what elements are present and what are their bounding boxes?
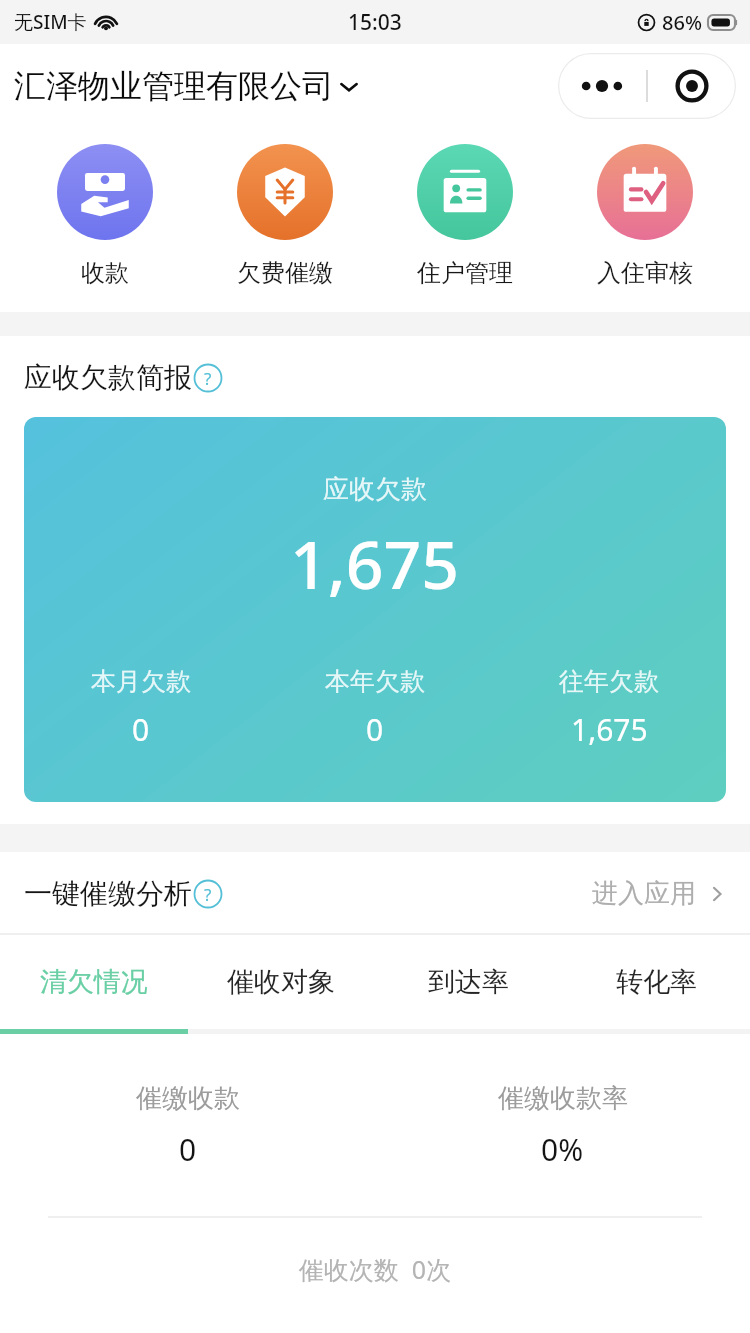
button[interactable]: 住户管理 xyxy=(390,144,540,288)
button[interactable]: 汇泽物业管理有限公司 xyxy=(14,66,361,106)
button[interactable]: 欠费催缴 xyxy=(210,144,360,288)
staticText: 清欠情况 xyxy=(40,965,148,999)
staticText: 转化率 xyxy=(616,965,697,999)
staticText: 催收次数 0次 xyxy=(0,1252,750,1286)
staticText: 本年欠款 xyxy=(325,666,425,697)
staticText: 86% xyxy=(662,9,702,36)
staticText: 汇泽物业管理有限公司 xyxy=(14,66,334,106)
button[interactable]: Help xyxy=(193,363,223,393)
staticText: 往年欠款 xyxy=(559,666,659,697)
staticText: ? xyxy=(204,883,212,906)
staticText: 0 xyxy=(366,709,384,750)
button[interactable]: More options xyxy=(558,53,646,119)
staticText: 一键催缴分析 xyxy=(24,876,192,911)
staticText: 催缴收款 xyxy=(136,1082,240,1115)
staticText: 15:03 xyxy=(348,8,402,37)
staticText: ? xyxy=(204,367,212,390)
staticText: 催收对象 xyxy=(227,965,335,999)
staticText: 入住审核 xyxy=(597,258,693,288)
staticText: 0% xyxy=(541,1129,584,1170)
staticText: 应收欠款简报 xyxy=(24,360,192,395)
staticText: 0 xyxy=(132,709,150,750)
button[interactable]: Close mini program xyxy=(648,53,736,119)
staticText: 住户管理 xyxy=(417,258,513,288)
staticText: 1,675 xyxy=(571,709,648,750)
button[interactable]: 清欠情况 xyxy=(0,935,187,1029)
button[interactable]: 应收欠款 xyxy=(24,417,726,802)
staticText: 1,675 xyxy=(290,518,460,608)
staticText: 进入应用 xyxy=(592,877,696,910)
button[interactable]: Help xyxy=(193,879,223,909)
staticText: 欠费催缴 xyxy=(237,258,333,288)
button[interactable]: 到达率 xyxy=(374,935,562,1029)
button[interactable]: 收款 xyxy=(30,144,180,288)
staticText: 催缴收款率 xyxy=(498,1082,628,1115)
staticText: 本月欠款 xyxy=(91,666,191,697)
button[interactable]: 进入应用 xyxy=(592,877,728,910)
staticText: 无SIM卡 xyxy=(14,9,87,35)
button[interactable]: 转化率 xyxy=(562,935,750,1029)
staticText: 到达率 xyxy=(428,965,509,999)
button[interactable]: 催收对象 xyxy=(187,935,374,1029)
staticText: 应收欠款 xyxy=(323,473,427,506)
staticText: 收款 xyxy=(81,258,129,288)
button[interactable]: 入住审核 xyxy=(570,144,720,288)
staticText: 0 xyxy=(179,1129,197,1170)
